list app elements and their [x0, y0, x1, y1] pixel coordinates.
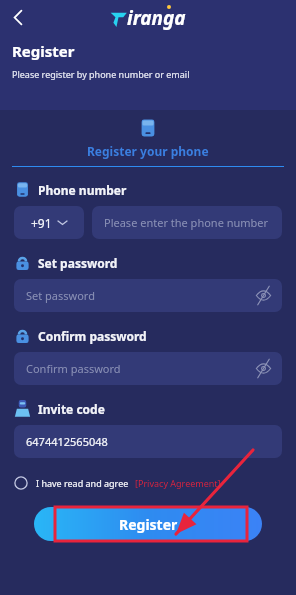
- staticText: Register: [12, 41, 75, 61]
- button[interactable]: Please enter the phone number: [92, 206, 282, 239]
- button[interactable]: Register: [34, 507, 262, 541]
- button[interactable]: I have read and agree: [14, 476, 282, 490]
- button[interactable]: +91: [14, 206, 84, 239]
- staticText: Please register by phone number or email: [12, 68, 190, 80]
- button[interactable]: Show password: [255, 360, 272, 377]
- button[interactable]: 6474412565048: [14, 425, 282, 458]
- staticText: iranga: [127, 5, 186, 31]
- staticText: Confirm password: [26, 361, 121, 376]
- staticText: +91: [31, 215, 52, 231]
- staticText: Phone number: [38, 182, 127, 198]
- staticText: Register your phone: [87, 143, 209, 159]
- staticText: Confirm password: [38, 328, 147, 344]
- button[interactable]: Back: [3, 4, 29, 30]
- staticText: [Privacy Agreement]: [135, 477, 221, 489]
- button[interactable]: Confirm password: [14, 352, 282, 385]
- staticText: 6474412565048: [26, 434, 108, 449]
- button[interactable]: Set password: [14, 279, 282, 312]
- button[interactable]: Show password: [255, 287, 272, 304]
- staticText: Register: [119, 515, 178, 534]
- staticText: I have read and agree: [36, 477, 129, 489]
- button[interactable]: Register your phone: [0, 110, 296, 167]
- staticText: Invite code: [38, 401, 105, 417]
- staticText: Set password: [26, 288, 95, 303]
- staticText: Please enter the phone number: [104, 215, 269, 230]
- staticText: Set password: [38, 255, 118, 271]
